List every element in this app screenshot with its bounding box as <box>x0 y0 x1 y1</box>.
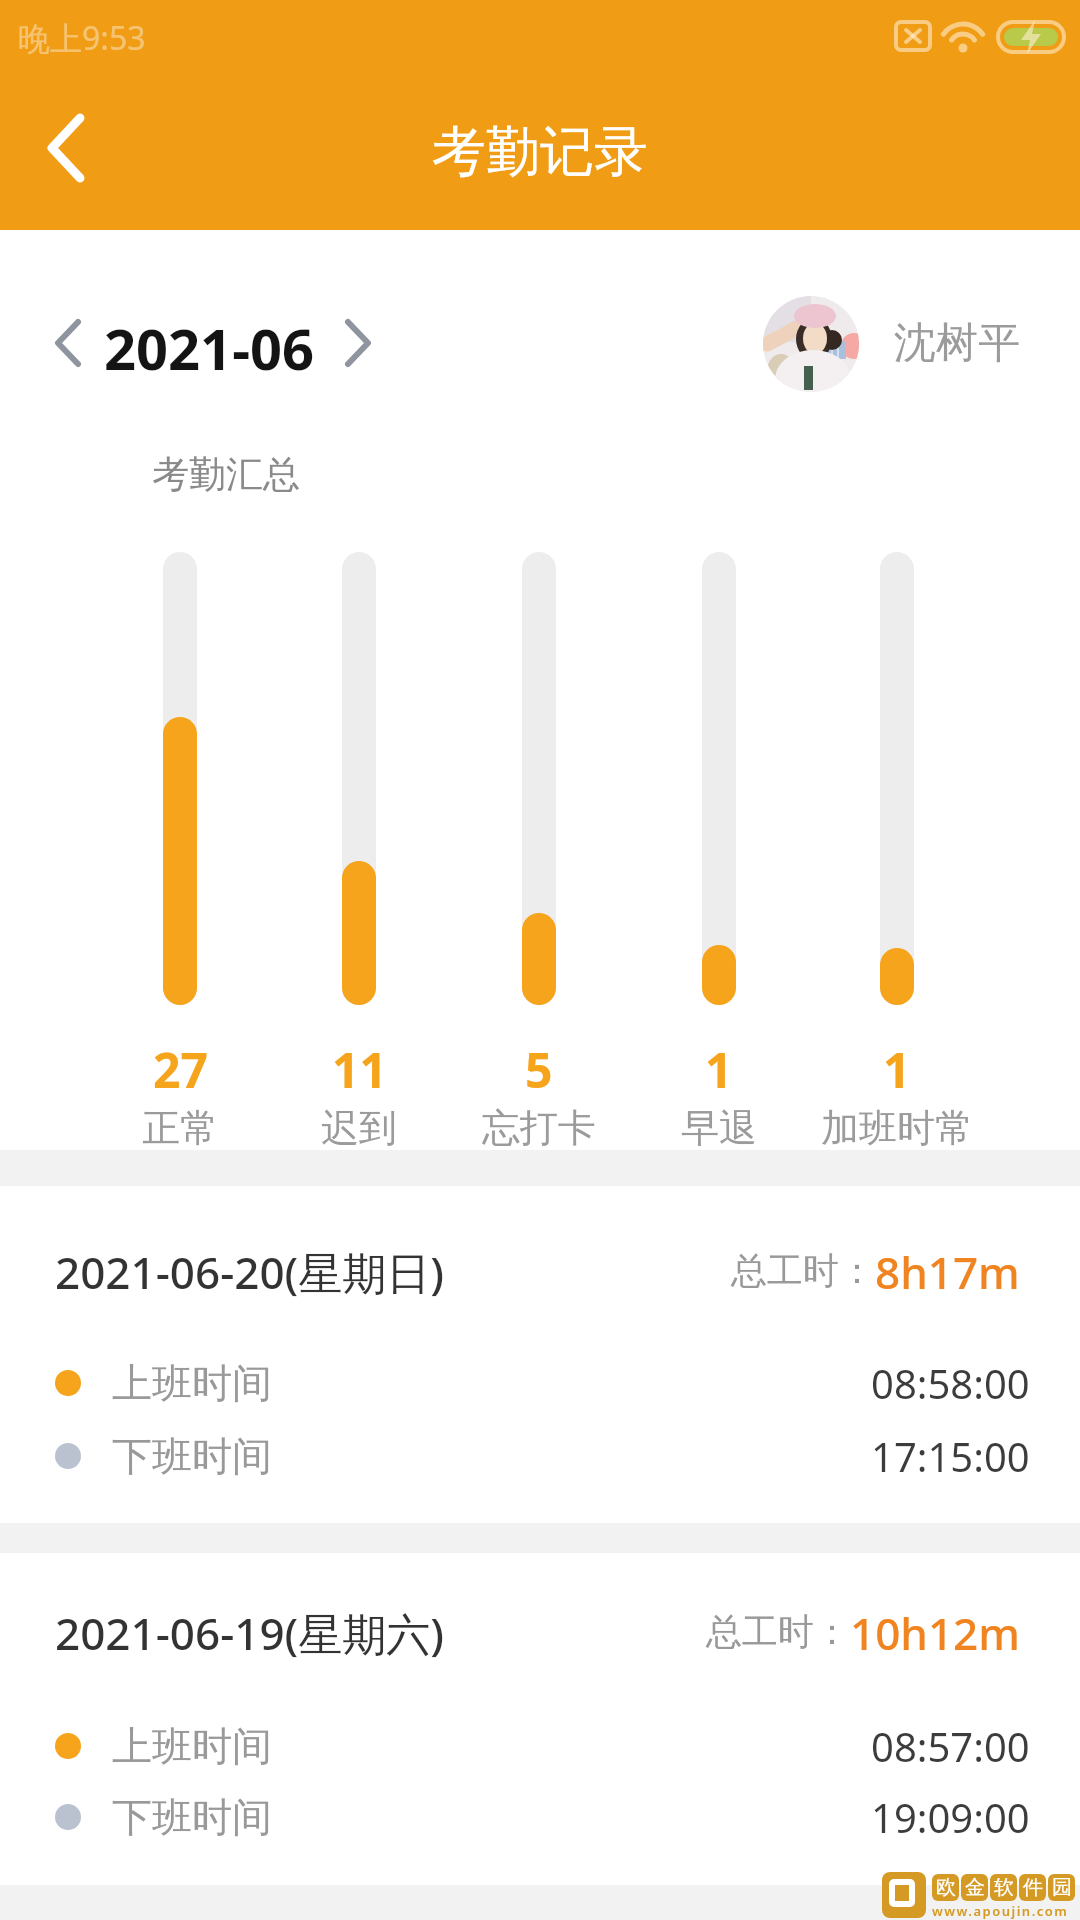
staticText: 下班时间 <box>112 1792 272 1842</box>
staticText: 考勤汇总 <box>152 451 300 498</box>
staticText: 加班时常 <box>821 1104 973 1152</box>
staticText: 正常 <box>142 1104 218 1152</box>
staticText: 上班时间 <box>112 1721 272 1771</box>
button[interactable] <box>40 306 96 378</box>
staticText: 欧 <box>936 1875 956 1900</box>
staticText: 5 <box>525 1037 553 1097</box>
staticText: 晚上9:53 <box>18 16 146 60</box>
staticText: 件 <box>1023 1875 1043 1900</box>
staticText: 金 <box>965 1875 985 1900</box>
staticText: 17:15:00 <box>871 1429 1030 1483</box>
button[interactable] <box>763 296 859 392</box>
button[interactable]: 2021-06-19(星期六) <box>55 1603 445 1659</box>
staticText: 软 <box>994 1875 1014 1900</box>
staticText: 上班时间 <box>112 1358 272 1408</box>
staticText: 沈树平 <box>894 317 1020 370</box>
staticText: 总工时： <box>731 1248 875 1293</box>
staticText: 2021-06-20(星期日) <box>55 1242 445 1298</box>
staticText: 总工时： <box>706 1609 850 1654</box>
staticText: 下班时间 <box>112 1431 272 1481</box>
staticText: 迟到 <box>321 1104 397 1152</box>
button[interactable] <box>330 306 386 378</box>
staticText: 1 <box>883 1037 911 1097</box>
staticText: 8h17m <box>875 1242 1020 1298</box>
staticText: 19:09:00 <box>871 1790 1030 1844</box>
button[interactable] <box>30 100 110 196</box>
staticText: 08:58:00 <box>871 1356 1030 1410</box>
button[interactable]: 2021-06-20(星期日) <box>55 1242 445 1298</box>
staticText: 忘打卡 <box>482 1104 596 1152</box>
staticText: 27 <box>153 1037 208 1097</box>
staticText: 10h12m <box>850 1603 1020 1659</box>
staticText: 考勤记录 <box>432 118 648 186</box>
staticText: 2021-06 <box>104 310 315 376</box>
staticText: 1 <box>705 1037 733 1097</box>
staticText: 园 <box>1052 1875 1072 1900</box>
staticText: 2021-06-19(星期六) <box>55 1603 445 1659</box>
staticText: 08:57:00 <box>871 1719 1030 1773</box>
staticText: 11 <box>332 1037 387 1097</box>
staticText: 早退 <box>681 1104 757 1152</box>
staticText: www.apoujin.com <box>932 1902 1069 1920</box>
